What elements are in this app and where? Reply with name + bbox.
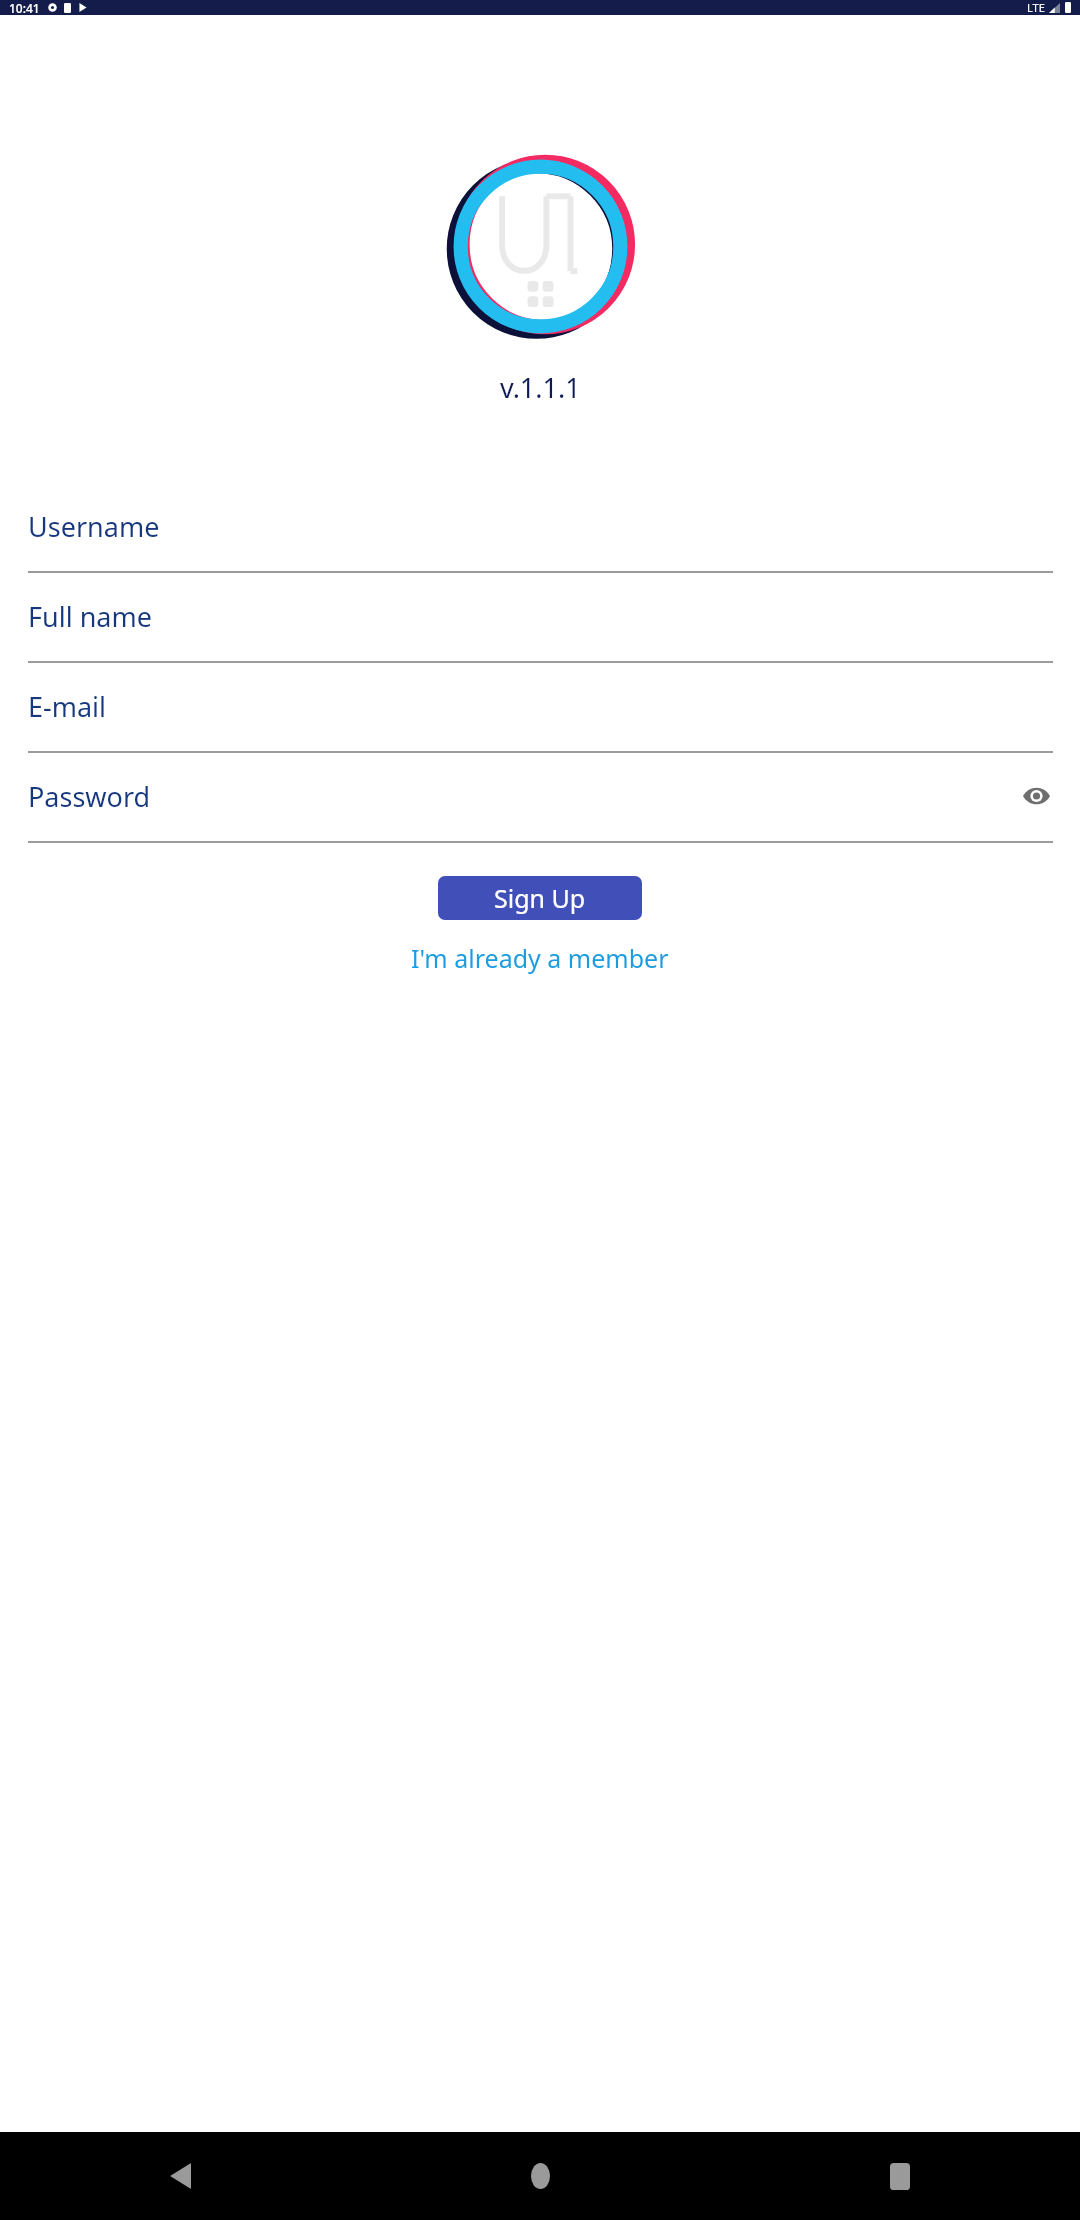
button[interactable]: Home [360, 2132, 720, 2220]
staticText: Password [28, 778, 151, 815]
staticText: Full name [28, 598, 152, 635]
button[interactable]: Recents [720, 2132, 1080, 2220]
staticText: 10:41 [9, 0, 40, 15]
staticText: Username [28, 508, 160, 545]
button[interactable]: E-mail [28, 683, 1053, 753]
button[interactable]: Username [28, 503, 1053, 573]
button[interactable]: I'm already a member [397, 936, 683, 980]
button[interactable]: Password [28, 773, 1053, 843]
button[interactable]: Back [0, 2132, 360, 2220]
staticText: E-mail [28, 688, 107, 725]
staticText: I'm already a member [411, 941, 669, 975]
button[interactable]: Sign Up [438, 876, 642, 920]
staticText: LTE [1027, 0, 1045, 15]
button[interactable]: Show password [1019, 779, 1053, 813]
staticText: Sign Up [494, 881, 586, 915]
staticText: v.1.1.1 [500, 369, 581, 406]
button[interactable]: Full name [28, 593, 1053, 663]
